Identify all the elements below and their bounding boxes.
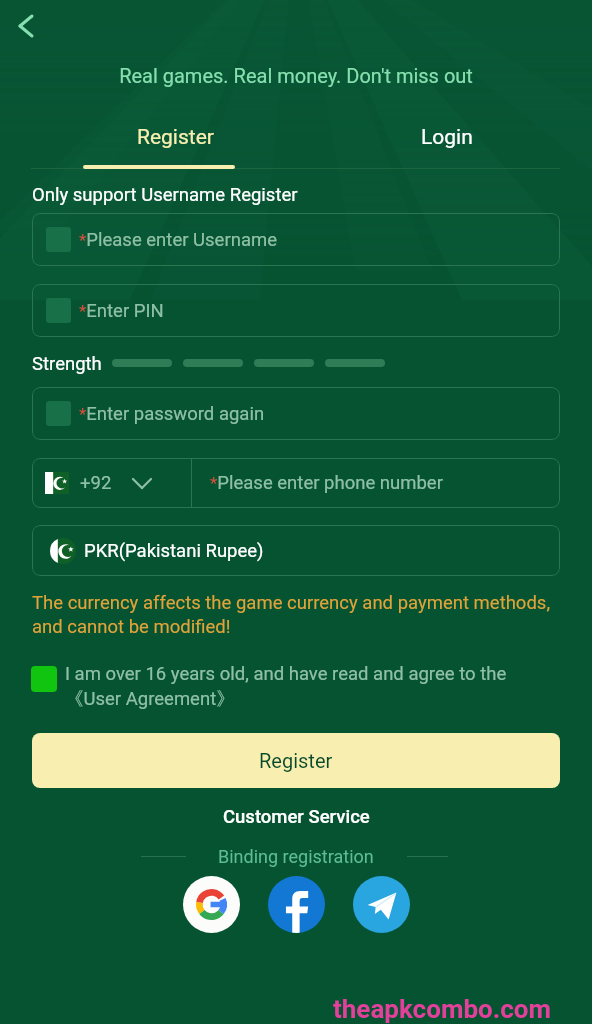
button[interactable]: Sign in with Telegram: [353, 876, 410, 933]
button[interactable]: Register: [100, 112, 250, 162]
staticText: Only support Username Register: [32, 184, 298, 206]
button[interactable]: Agree to user agreement: [31, 666, 57, 692]
button[interactable]: Sign in with Google: [183, 876, 240, 933]
staticText: Strength: [32, 353, 102, 375]
button[interactable]: *Please enter phone number: [192, 458, 560, 508]
staticText: +92: [80, 472, 112, 494]
staticText: *Enter password again: [79, 403, 265, 425]
staticText: Real games. Real money. Don't miss out: [0, 64, 592, 87]
button[interactable]: Login: [372, 112, 522, 162]
staticText: Register: [137, 125, 214, 150]
staticText: Binding registration: [218, 846, 374, 867]
button[interactable]: Back: [4, 4, 48, 48]
staticText: *Please enter phone number: [210, 472, 443, 494]
button[interactable]: *Enter password again: [32, 387, 560, 440]
button[interactable]: *Enter PIN: [32, 284, 560, 337]
staticText: *Please enter Username: [79, 229, 277, 251]
staticText: PKR(Pakistani Rupee): [84, 540, 264, 562]
staticText: theapkcombo.com: [333, 994, 552, 1024]
button[interactable]: +92: [32, 458, 191, 508]
staticText: The currency affects the game currency a…: [32, 592, 562, 638]
button[interactable]: Sign in with Facebook: [268, 876, 325, 933]
staticText: I am over 16 years old, and have read an…: [65, 663, 515, 710]
staticText: Customer Service: [223, 806, 370, 828]
staticText: *Enter PIN: [79, 300, 164, 322]
staticText: Register: [259, 749, 333, 772]
button[interactable]: PKR(Pakistani Rupee): [32, 525, 560, 576]
button[interactable]: Customer Service: [215, 804, 378, 830]
button[interactable]: *Please enter Username: [32, 213, 560, 266]
staticText: Login: [421, 125, 473, 150]
button[interactable]: Register: [32, 733, 560, 788]
